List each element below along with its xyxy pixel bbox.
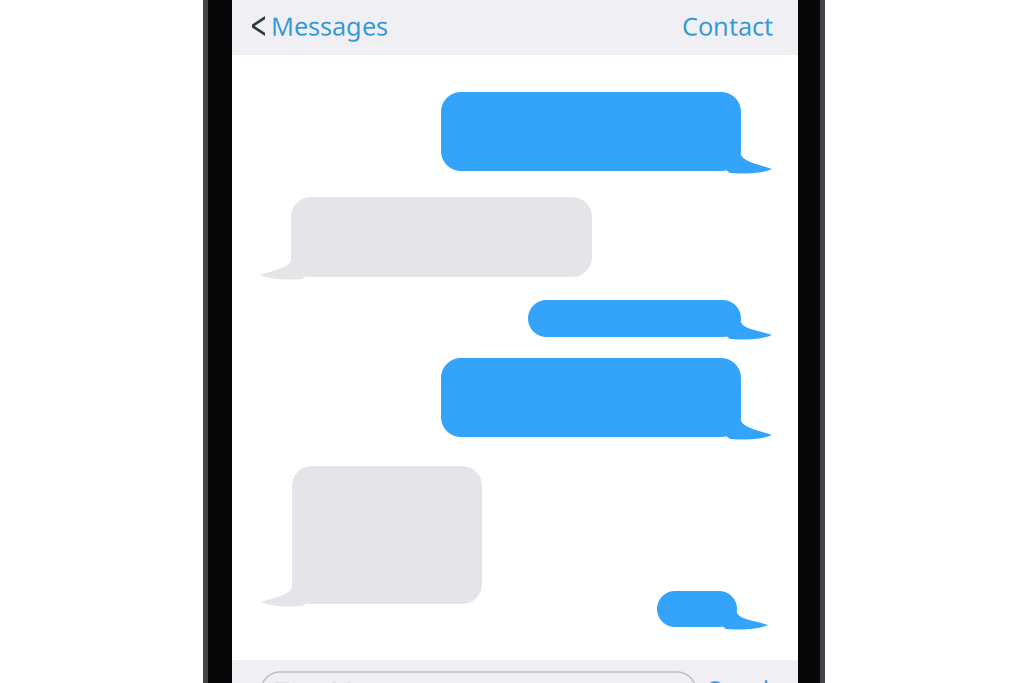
button[interactable]: Message received [257, 197, 592, 277]
button[interactable]: Messages [250, 1, 390, 51]
button[interactable]: Send [703, 665, 773, 683]
staticText: Messages [271, 9, 388, 43]
button[interactable]: Message you sent [528, 300, 775, 337]
staticText: Contact [682, 9, 773, 43]
button[interactable]: Message you sent [441, 92, 775, 171]
button[interactable]: Contact [680, 1, 775, 51]
staticText: Send [707, 673, 769, 683]
button[interactable]: Message received [258, 466, 482, 604]
button[interactable]: Message you sent [657, 591, 771, 627]
button[interactable]: Message you sent [441, 358, 775, 437]
button[interactable]: Text Message [261, 672, 696, 683]
